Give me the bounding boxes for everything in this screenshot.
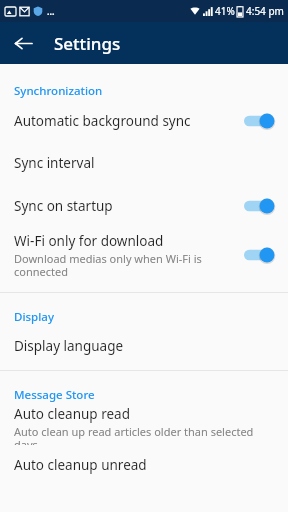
button[interactable]: Display language	[0, 327, 288, 364]
button[interactable]: Toggle	[244, 111, 276, 131]
button[interactable]: Toggle	[244, 196, 276, 216]
staticText: Automatic background sync	[14, 112, 191, 130]
staticText: Message Store	[14, 387, 95, 403]
staticText: Auto cleanup read	[14, 405, 130, 423]
button[interactable]: Automatic background sync	[0, 101, 288, 141]
button[interactable]: Wi-Fi only for download	[0, 227, 288, 283]
button[interactable]: Auto cleanup read	[0, 405, 288, 445]
staticText: Sync on startup	[14, 197, 113, 215]
staticText: Display	[14, 309, 54, 325]
staticText: 41%	[215, 4, 235, 18]
button[interactable]: Back	[6, 26, 40, 60]
staticText: Auto clean up read articles older than s…	[14, 424, 276, 445]
staticText: Display language	[14, 337, 124, 355]
staticText: Settings	[54, 32, 121, 55]
button[interactable]: Toggle	[244, 245, 276, 265]
staticText: Auto cleanup unread	[14, 456, 147, 474]
staticText: Synchronization	[14, 83, 103, 99]
staticText: ...	[47, 5, 55, 17]
staticText: Sync interval	[14, 154, 95, 172]
staticText: 4:54 pm	[246, 4, 284, 18]
staticText: Download medias only when Wi-Fi is conne…	[14, 251, 238, 279]
button[interactable]: Auto cleanup unread	[0, 445, 288, 485]
staticText: Wi-Fi only for download	[14, 232, 164, 250]
button[interactable]: Sync interval	[0, 141, 288, 184]
button[interactable]: Sync on startup	[0, 184, 288, 227]
